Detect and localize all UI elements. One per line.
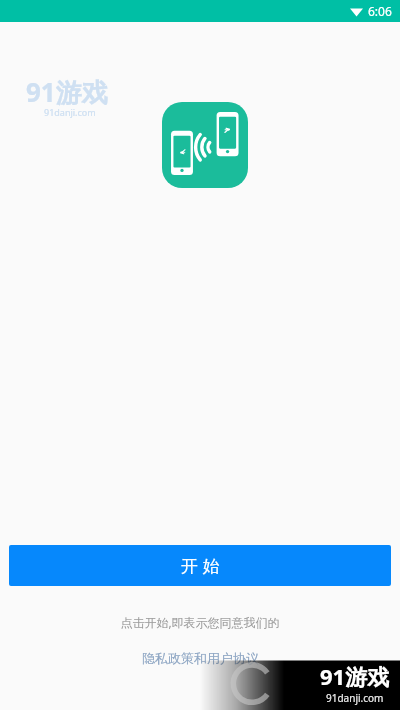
staticText: 91danji.com [44,106,96,118]
button[interactable]: 开 始 [9,545,391,586]
staticText: 91游戏 [26,74,108,110]
staticText: 6:06 [368,3,392,19]
staticText: 91游戏 [320,661,390,691]
staticText: 隐私政策和用户协议 [142,650,259,666]
staticText: 开 始 [181,554,220,577]
staticText: 91danji.com [326,691,384,705]
button[interactable]: 隐私政策和用户协议 [138,648,263,668]
staticText: 点击开始,即表示您同意我们的 [120,614,280,630]
